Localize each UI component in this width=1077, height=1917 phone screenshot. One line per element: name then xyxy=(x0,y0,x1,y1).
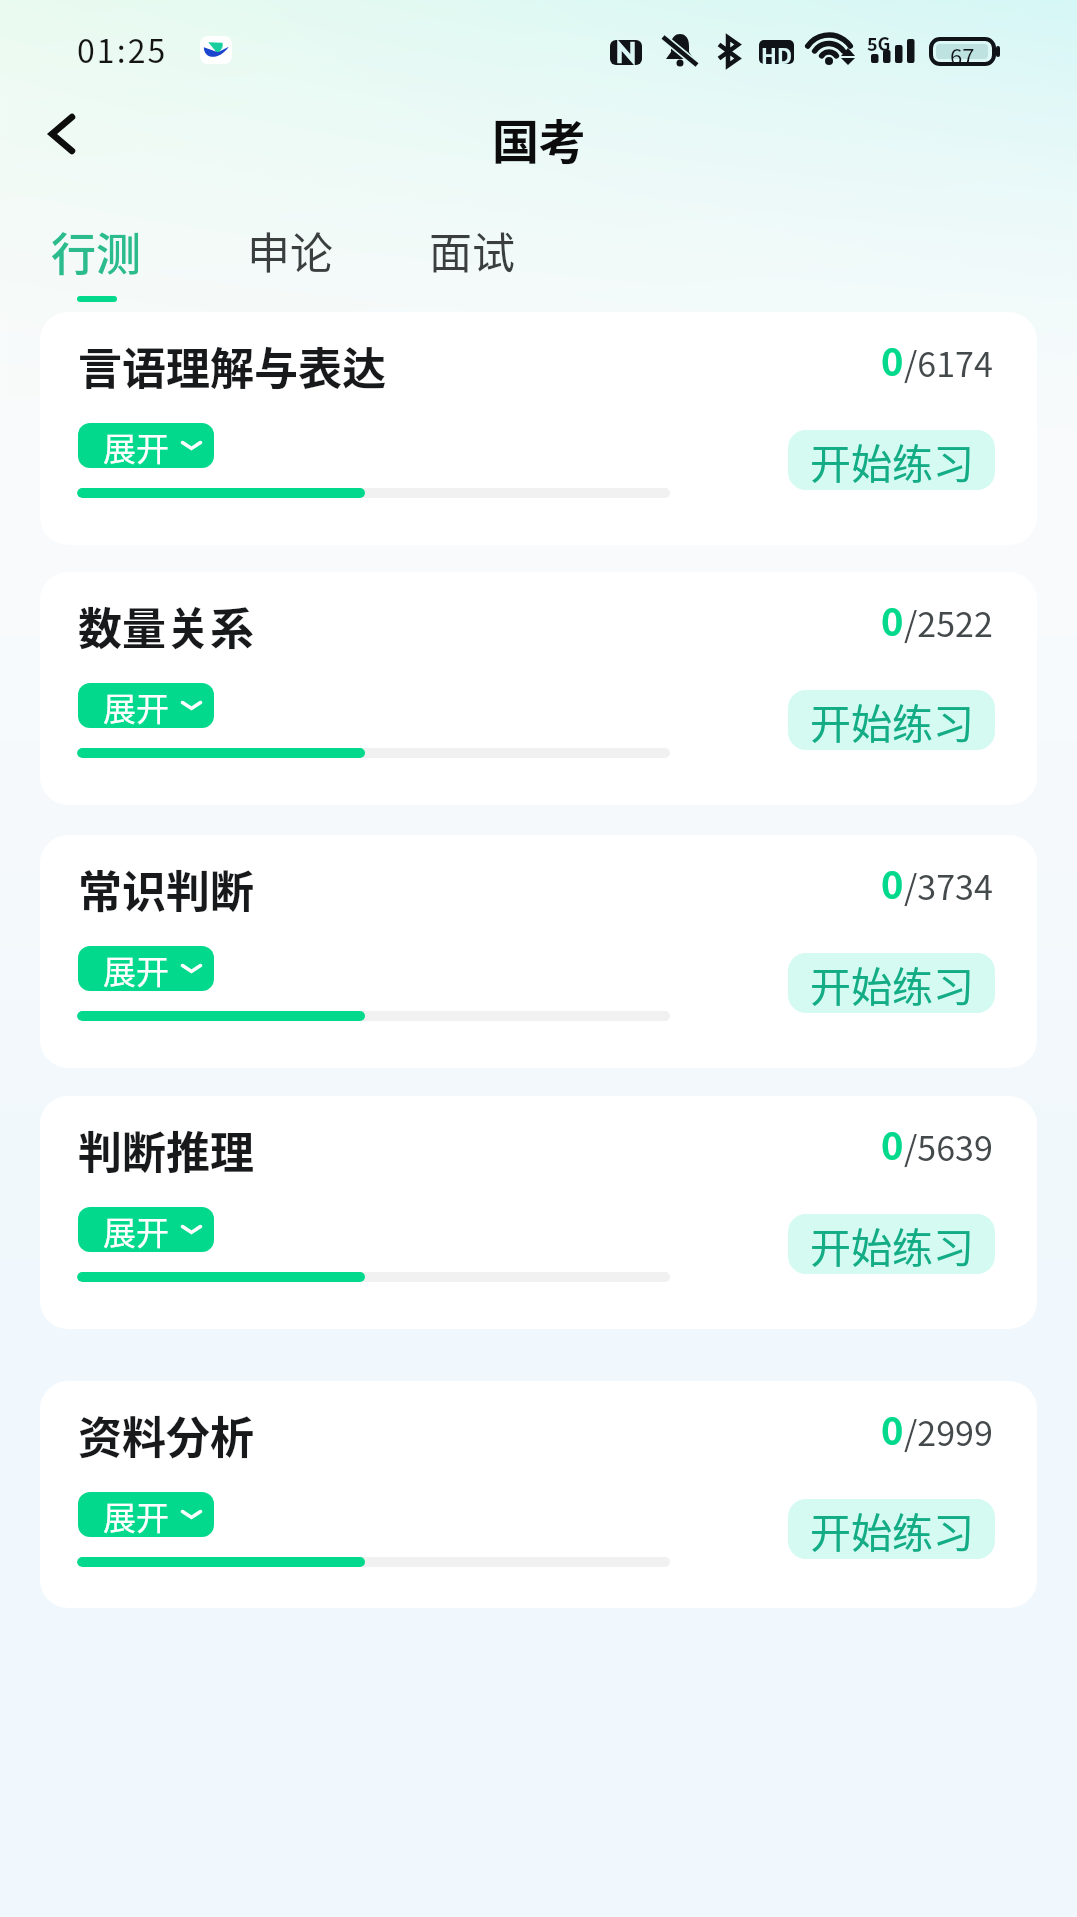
staticText: 行测 xyxy=(51,219,142,284)
button[interactable]: 开始练习 xyxy=(788,690,995,750)
button[interactable]: 开始练习 xyxy=(788,1499,995,1559)
staticText: 资料分析 xyxy=(78,1403,254,1467)
staticText: 展开 xyxy=(103,946,169,991)
staticText: 开始练习 xyxy=(810,431,974,490)
staticText: 言语理解与表达 xyxy=(78,334,386,398)
button[interactable]: 申论 xyxy=(247,219,333,281)
staticText: 0 xyxy=(881,855,904,910)
staticText: /2999 xyxy=(904,1407,993,1456)
button[interactable]: 面试 xyxy=(429,219,515,281)
staticText: 常识判断 xyxy=(78,857,254,921)
staticText: /6174 xyxy=(904,338,993,387)
staticText: 5G xyxy=(867,30,891,52)
button[interactable]: 行测 xyxy=(51,219,142,302)
staticText: 数量关系 xyxy=(78,594,254,658)
button[interactable]: 开始练习 xyxy=(788,1214,995,1274)
staticText: 展开 xyxy=(103,1207,169,1252)
staticText: 0 xyxy=(881,1116,904,1171)
staticText: 开始练习 xyxy=(810,1500,974,1559)
button[interactable]: 数量关系 xyxy=(40,572,1037,805)
button[interactable]: 开始练习 xyxy=(788,430,995,490)
staticText: 开始练习 xyxy=(810,691,974,750)
staticText: 67 xyxy=(950,39,975,64)
button[interactable]: 判断推理 xyxy=(40,1096,1037,1329)
staticText: /5639 xyxy=(904,1122,993,1171)
button[interactable]: 展开 xyxy=(78,683,214,728)
button[interactable]: 资料分析 xyxy=(40,1381,1037,1608)
button[interactable]: 展开 xyxy=(78,1207,214,1252)
button[interactable]: 展开 xyxy=(78,423,214,468)
staticText: 0 xyxy=(881,1401,904,1456)
staticText: 面试 xyxy=(429,219,515,281)
button[interactable]: 展开 xyxy=(78,946,214,991)
staticText: 展开 xyxy=(103,683,169,728)
staticText: 开始练习 xyxy=(810,1215,974,1274)
button[interactable]: 开始练习 xyxy=(788,953,995,1013)
button[interactable]: 展开 xyxy=(78,1492,214,1537)
button[interactable]: 常识判断 xyxy=(40,835,1037,1068)
staticText: HD xyxy=(761,40,792,64)
staticText: 国考 xyxy=(492,104,586,172)
staticText: 0 xyxy=(881,332,904,387)
button[interactable]: Back xyxy=(28,100,96,168)
staticText: 0 xyxy=(881,592,904,647)
staticText: 展开 xyxy=(103,1492,169,1537)
staticText: /2522 xyxy=(904,598,993,647)
button[interactable]: 言语理解与表达 xyxy=(40,312,1037,545)
staticText: 判断推理 xyxy=(78,1118,254,1182)
staticText: 展开 xyxy=(103,423,169,468)
staticText: 01:25 xyxy=(77,26,168,72)
staticText: 开始练习 xyxy=(810,954,974,1013)
staticText: /3734 xyxy=(904,861,993,910)
staticText: 申论 xyxy=(247,219,333,281)
